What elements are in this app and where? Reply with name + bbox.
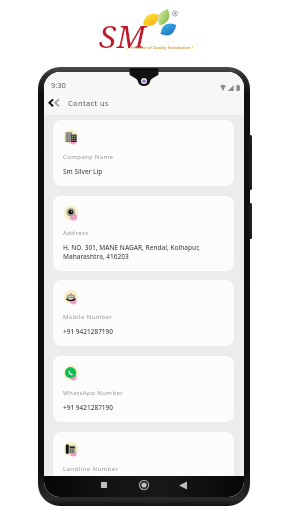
button[interactable]: Recent apps bbox=[95, 476, 113, 494]
staticText: Contact us bbox=[68, 98, 109, 108]
staticText: ... Promise of Quality Satisfaction ! bbox=[126, 45, 193, 51]
staticText: +91 2312345678 bbox=[63, 479, 114, 487]
staticText: H. NO. 301, MANE NAGAR, Rendal, Kolhapur… bbox=[63, 243, 200, 261]
staticText: +91 9421287190 bbox=[63, 327, 114, 336]
staticText: SM bbox=[99, 15, 147, 57]
button[interactable]: Back bbox=[174, 476, 192, 494]
staticText: Sm Silver Lip bbox=[63, 167, 103, 176]
staticText: Landline Number bbox=[63, 465, 119, 473]
staticText: WhatsApp Number bbox=[63, 389, 124, 397]
staticText: 9:30 bbox=[51, 80, 66, 90]
button[interactable]: Address bbox=[53, 196, 234, 271]
button[interactable]: Back bbox=[45, 94, 63, 112]
button[interactable]: Landline Number bbox=[53, 432, 234, 497]
staticText: +91 9421287190 bbox=[63, 403, 114, 412]
staticText: Address bbox=[63, 229, 89, 237]
button[interactable]: Home bbox=[135, 476, 153, 494]
staticText: Company Name bbox=[63, 153, 114, 161]
button[interactable]: Mobile Number bbox=[53, 280, 234, 346]
staticText: Mobile Number bbox=[63, 313, 113, 321]
button[interactable]: WhatsApp Number bbox=[53, 356, 234, 422]
button[interactable]: Company Name bbox=[53, 120, 234, 186]
